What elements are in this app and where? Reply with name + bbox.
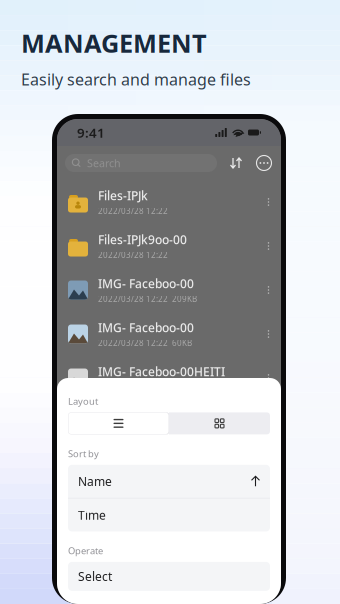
button[interactable]: IMG- Faceboo-00HEITI — [57, 356, 281, 400]
staticText: IMG- Faceboo-00 — [98, 320, 194, 336]
staticText: Name — [78, 473, 112, 489]
button[interactable]: Sort — [227, 154, 245, 172]
button[interactable]: Select — [68, 562, 270, 591]
button[interactable]: IMG- Faceboo-00 — [57, 312, 281, 356]
button[interactable]: Time — [68, 498, 270, 531]
button[interactable] — [68, 412, 169, 434]
staticText: MANAGEMENT — [21, 26, 207, 60]
staticText: Files-IPJk9oo-00 — [98, 232, 187, 248]
staticText: Easily search and manage files — [21, 69, 251, 90]
staticText: Select — [78, 568, 112, 584]
button[interactable]: Name — [68, 465, 270, 498]
staticText: Layout — [68, 395, 98, 407]
staticText: 2022/03/28 12:22 60KB — [98, 338, 192, 348]
staticText: 2022/03/28 12:22 — [98, 250, 168, 260]
button[interactable]: IMG- Faceboo-00 — [57, 268, 281, 312]
staticText: IMG- Faceboo-00HEITI — [98, 364, 225, 380]
staticText: Files-IPJk — [98, 188, 148, 204]
staticText: 2022/03/28 12:22 — [98, 206, 168, 216]
staticText: Sort by — [68, 447, 99, 460]
staticText: Time — [78, 507, 106, 523]
button[interactable]: Files-IPJk9oo-00 — [57, 224, 281, 268]
staticText: 2022/03/28 12:22 209KB — [98, 294, 197, 304]
staticText: Search — [87, 156, 121, 170]
staticText: Operate — [68, 544, 103, 557]
button[interactable] — [169, 412, 270, 434]
staticText: IMG- Faceboo-00 — [98, 276, 194, 292]
button[interactable]: Files-IPJk — [57, 180, 281, 224]
staticText: 9:41 — [77, 124, 105, 141]
button[interactable]: More options — [255, 154, 273, 172]
